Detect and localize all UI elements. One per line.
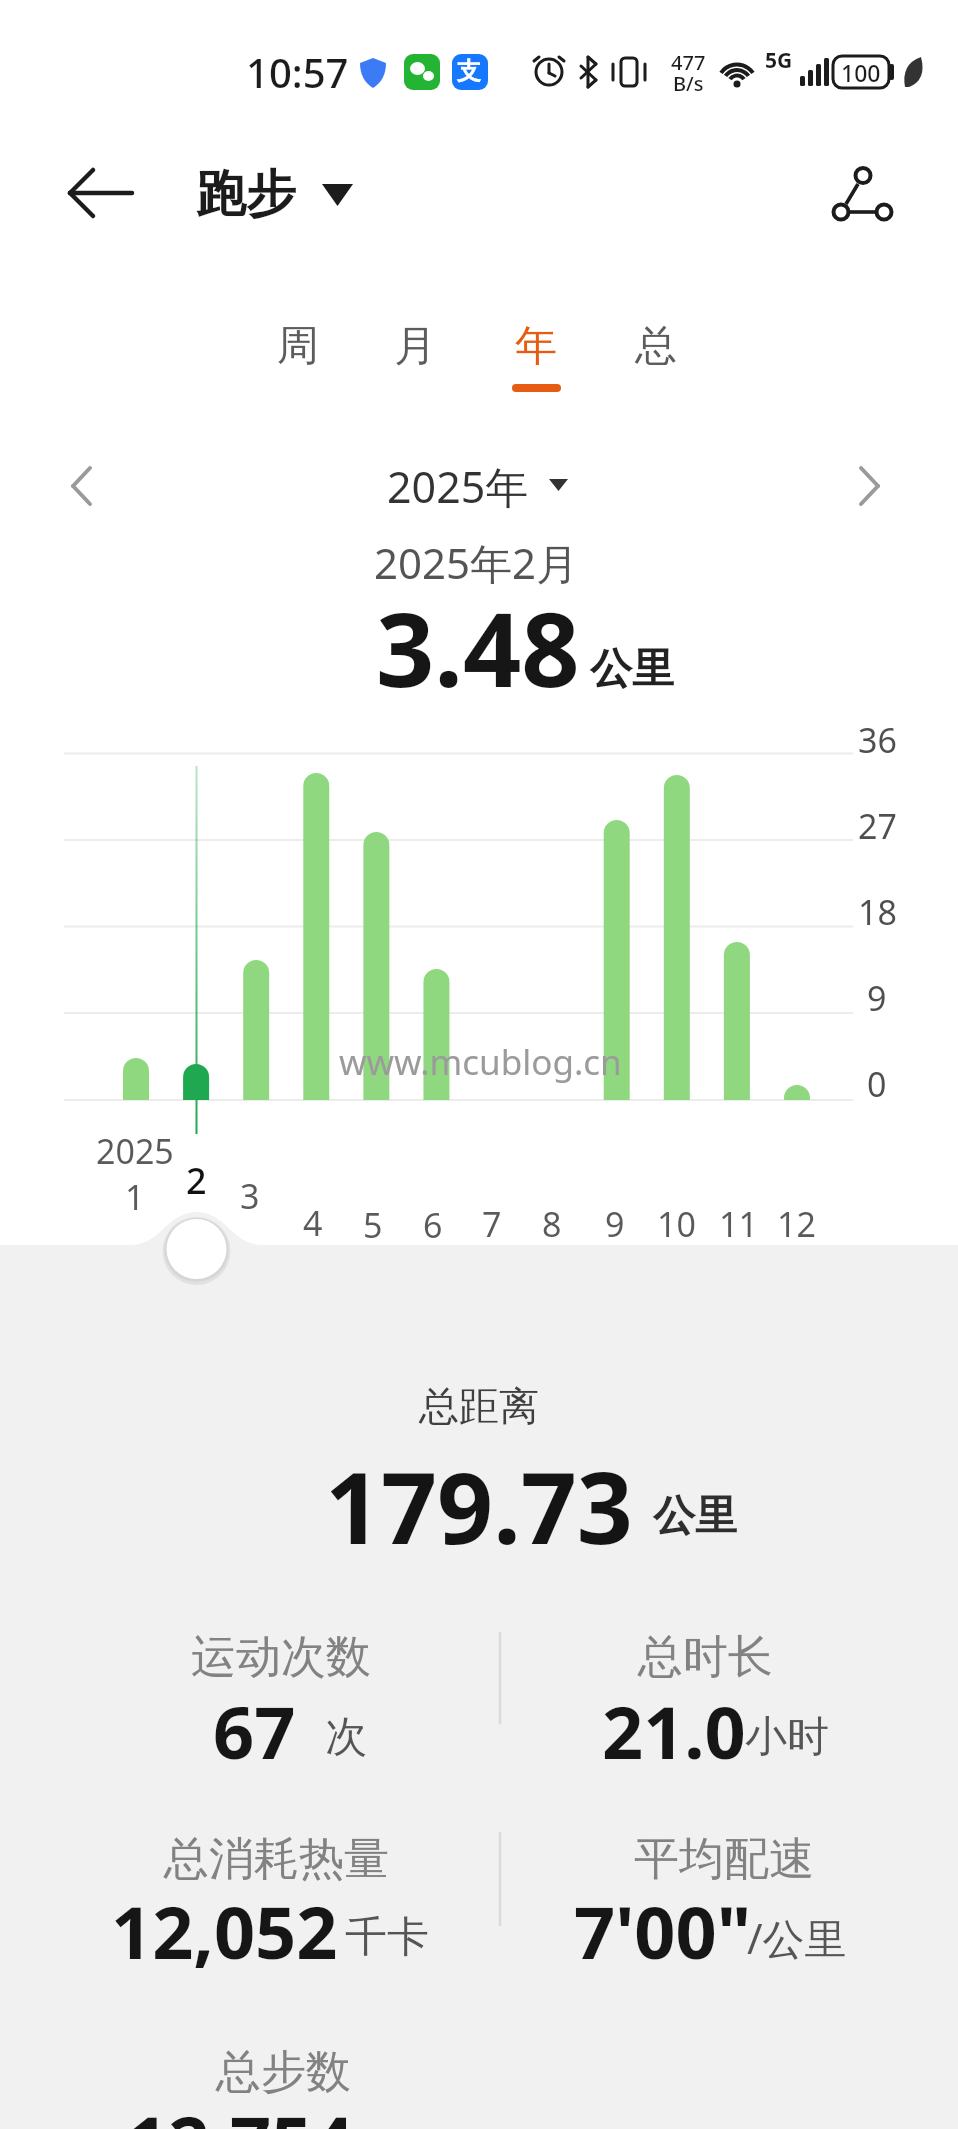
staticText: 月 <box>394 320 436 373</box>
staticText: 公里 <box>653 1490 737 1543</box>
staticText: 2025年 <box>387 457 529 516</box>
staticText: 3.48 <box>376 578 580 717</box>
staticText: 12 <box>777 1201 816 1247</box>
staticText: 2025 <box>96 1128 174 1174</box>
staticText: 小时 <box>745 1711 829 1764</box>
staticText: 运动次数 <box>191 1629 371 1686</box>
staticText: 21.0 <box>602 1682 746 1780</box>
button[interactable] <box>818 158 910 232</box>
button[interactable]: 周 <box>38 256 558 436</box>
staticText: 2025年2月 <box>374 534 579 591</box>
staticText: 总消耗热量 <box>164 1831 389 1888</box>
staticText: 平均配速 <box>634 1831 814 1888</box>
staticText: 总时长 <box>638 1629 773 1686</box>
staticText: 8 <box>542 1201 562 1247</box>
staticText: 9 <box>605 1201 625 1247</box>
staticText: 3 <box>240 1173 260 1219</box>
staticText: 10:57 <box>246 45 349 99</box>
staticText: 10 <box>657 1201 696 1247</box>
button[interactable]: 总 <box>396 256 916 436</box>
staticText: 年 <box>515 320 557 373</box>
staticText: 5 <box>363 1202 383 1248</box>
button[interactable]: 月 <box>155 256 675 436</box>
staticText: 12,754 <box>127 2092 354 2129</box>
staticText: 1 <box>125 1174 145 1220</box>
staticText: 总步数 <box>216 2044 351 2101</box>
staticText: 公里 <box>590 643 674 696</box>
button[interactable] <box>50 452 114 520</box>
staticText: 7 <box>482 1201 502 1247</box>
staticText: 4 <box>303 1200 323 1246</box>
staticText: 7'00" <box>574 1882 752 1980</box>
staticText: 9 <box>867 975 887 1021</box>
staticText: 总距离 <box>419 1381 539 1431</box>
staticText: 179.73 <box>325 1439 633 1572</box>
staticText: /公里 <box>747 1909 847 1966</box>
button[interactable] <box>48 158 138 232</box>
button[interactable]: 2025年 <box>198 396 718 576</box>
staticText: www.mcublog.cn <box>339 1038 622 1086</box>
staticText: 支 <box>457 56 481 86</box>
button[interactable]: 跑步 <box>0 104 506 284</box>
staticText: 100 <box>841 57 881 88</box>
button[interactable]: 年 <box>276 256 796 436</box>
staticText: 18 <box>858 889 897 935</box>
staticText: 次 <box>325 1711 367 1764</box>
staticText: 千卡 <box>345 1911 429 1964</box>
staticText: 周 <box>277 320 319 373</box>
staticText: 36 <box>858 717 897 763</box>
staticText: 跑步 <box>196 163 296 226</box>
staticText: 0 <box>867 1061 887 1107</box>
staticText: B/s <box>673 70 704 97</box>
staticText: 477 <box>671 49 706 76</box>
staticText: 27 <box>858 803 897 849</box>
staticText: 2 <box>186 1156 207 1205</box>
staticText: 总 <box>635 320 677 373</box>
button[interactable] <box>844 452 908 520</box>
staticText: 11 <box>719 1201 758 1247</box>
staticText: 67 <box>213 1682 296 1780</box>
staticText: 6 <box>423 1202 443 1248</box>
staticText: 5G <box>765 46 793 75</box>
staticText: 12,052 <box>111 1882 338 1980</box>
